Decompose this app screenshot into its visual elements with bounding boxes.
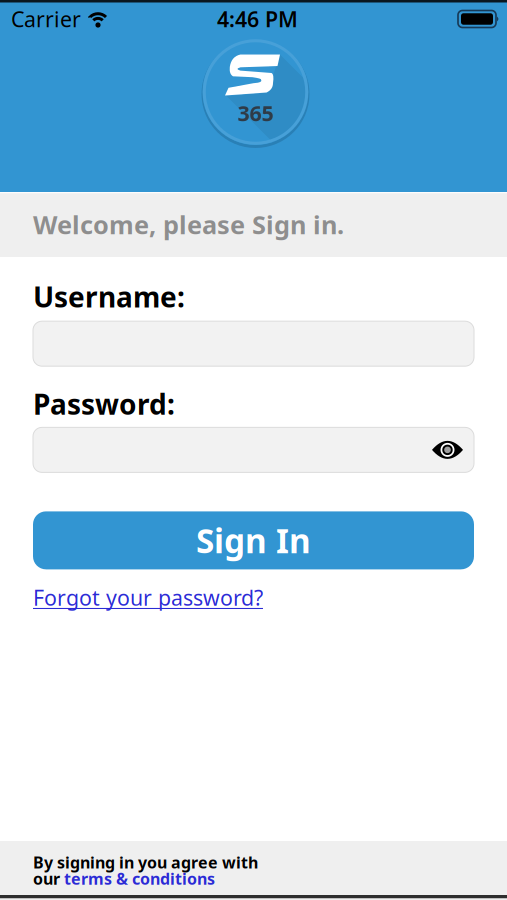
button[interactable]: Password <box>33 427 474 472</box>
staticText: 4:46 PM <box>217 5 298 33</box>
button[interactable]: terms & conditions <box>64 868 215 889</box>
staticText: Forgot your password? <box>33 583 263 612</box>
staticText: Welcome, please Sign in. <box>33 208 344 241</box>
button[interactable]: Forgot your password? <box>33 583 263 612</box>
staticText: Username: <box>33 278 185 315</box>
staticText: 365 <box>237 99 273 127</box>
staticText: Carrier <box>11 5 81 33</box>
staticText: Password: <box>33 385 175 422</box>
staticText: our <box>33 868 60 889</box>
staticText: By signing in you agree with <box>33 852 258 873</box>
staticText: Sign In <box>196 518 311 562</box>
button[interactable]: Sign In <box>33 511 474 569</box>
staticText: terms & conditions <box>64 868 215 889</box>
button[interactable]: Show password <box>432 440 474 460</box>
